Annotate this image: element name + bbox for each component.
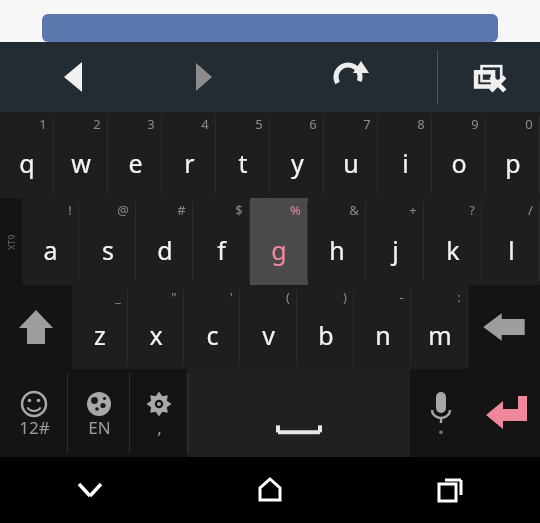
staticText: h [329,233,345,267]
staticText: _ [115,288,121,306]
staticText: & [349,201,359,219]
button[interactable]: Recent apps [360,457,540,523]
staticText: r [184,146,195,180]
staticText: u [343,146,359,180]
button[interactable]: 7 [324,112,378,198]
button[interactable]: Shift [0,285,72,369]
staticText: ( [286,288,290,306]
button[interactable]: _ [72,285,128,369]
staticText: / [528,201,533,219]
button[interactable]: 1 [0,112,54,198]
staticText: e [128,146,143,180]
staticText: f [217,233,226,267]
button[interactable]: Backspace [468,285,540,369]
staticText: a [43,233,58,267]
button[interactable]: Language [68,369,130,457]
staticText: n [375,318,391,352]
button[interactable]: + [366,198,424,285]
staticText: % [290,201,301,219]
button[interactable]: Previous [0,42,148,112]
staticText: - [399,288,404,306]
button[interactable]: ) [297,285,354,369]
button[interactable]: 9 [432,112,486,198]
staticText: z [94,318,106,352]
staticText: o [451,146,467,180]
button[interactable]: Space [188,369,410,457]
staticText: " [171,288,177,306]
staticText: ! [68,201,72,219]
staticText: 0 [525,115,533,133]
button[interactable]: Rotate [258,42,437,112]
staticText: k [446,233,460,267]
staticText: + [409,201,417,219]
staticText: y [291,146,304,180]
button[interactable]: Hide keyboard [0,457,180,523]
button[interactable]: & [308,198,366,285]
staticText: x [149,318,163,352]
button[interactable]: / [482,198,540,285]
button[interactable]: 2 [54,112,108,198]
button[interactable]: Symbols [0,369,68,457]
button[interactable]: 3 [108,112,162,198]
staticText: w [71,146,91,180]
staticText: EN [88,416,111,439]
button[interactable]: Home [180,457,360,523]
staticText: g [271,233,287,267]
staticText: 2 [93,115,101,133]
button[interactable]: 8 [378,112,432,198]
staticText: 3 [147,115,155,133]
button[interactable]: : [411,285,468,369]
staticText: b [318,318,334,352]
button[interactable]: ( [240,285,297,369]
button[interactable]: " [128,285,184,369]
button[interactable]: @ [79,198,136,285]
button[interactable]: # [136,198,193,285]
staticText: 5 [255,115,263,133]
staticText: $ [235,201,243,219]
staticText: 6 [309,115,317,133]
button[interactable]: $ [193,198,250,285]
staticText: : [457,288,461,306]
staticText: , [157,416,162,439]
staticText: 9 [471,115,479,133]
staticText: p [505,146,521,180]
button[interactable]: Next [148,42,258,112]
staticText: 4 [201,115,209,133]
staticText: t [238,146,248,180]
staticText: ' [230,288,233,306]
staticText: 12# [19,416,50,439]
staticText: ? [469,201,475,219]
staticText: j [392,233,399,267]
button[interactable]: Close keyboard window [438,42,540,112]
staticText: q [19,146,35,180]
staticText: d [157,233,173,267]
staticText: ) [343,288,347,306]
button[interactable]: % [250,198,308,285]
button[interactable]: 6 [270,112,324,198]
button[interactable]: ? [424,198,482,285]
staticText: i [402,146,409,180]
button[interactable]: XT9 [0,198,22,285]
button[interactable]: Settings [130,369,188,457]
staticText: v [262,318,275,352]
button[interactable]: 0 [486,112,540,198]
staticText: m [428,318,452,352]
button[interactable]: Enter [472,369,540,457]
button[interactable]: 4 [162,112,216,198]
staticText: 1 [39,115,47,133]
staticText: c [206,318,219,352]
button[interactable] [42,14,498,42]
button[interactable]: Voice input [410,369,472,457]
staticText: 8 [417,115,425,133]
staticText: # [177,201,186,219]
staticText: 7 [363,115,371,133]
button[interactable]: 5 [216,112,270,198]
button[interactable]: - [354,285,411,369]
staticText: s [102,233,114,267]
staticText: l [508,233,515,267]
staticText: XT9 [5,234,17,250]
button[interactable]: ' [184,285,240,369]
button[interactable]: ! [22,198,79,285]
staticText: @ [117,201,129,219]
